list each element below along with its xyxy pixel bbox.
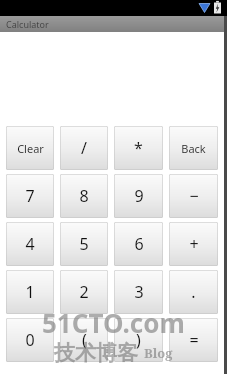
button[interactable]: + [169, 222, 218, 266]
button[interactable]: 8 [60, 174, 108, 218]
staticText: ( [82, 329, 87, 351]
staticText: * [134, 137, 143, 159]
staticText: Back [181, 141, 206, 156]
button[interactable]: * [114, 126, 163, 170]
button[interactable]: 1 [6, 270, 54, 314]
staticText: Blog [144, 344, 173, 362]
button[interactable]: 3 [114, 270, 163, 314]
staticText: + [189, 233, 199, 255]
button[interactable]: 6 [114, 222, 163, 266]
button[interactable]: = [169, 318, 218, 362]
staticText: 51CTO.com [42, 305, 185, 340]
button[interactable]: Clear [6, 126, 54, 170]
staticText: 9 [134, 185, 144, 207]
staticText: 0 [25, 329, 35, 351]
staticText: . [191, 281, 196, 303]
staticText: 6 [134, 233, 144, 255]
staticText: 5 [79, 233, 89, 255]
staticText: 4 [25, 233, 35, 255]
staticText: 8 [79, 185, 89, 207]
button[interactable]: 0 [6, 318, 54, 362]
staticText: 1 [25, 281, 35, 303]
button[interactable]: ) [114, 318, 163, 362]
staticText: ) [136, 329, 141, 351]
staticText: / [81, 137, 87, 159]
staticText: = [189, 329, 199, 351]
staticText: 7 [25, 185, 35, 207]
button[interactable]: 2 [60, 270, 108, 314]
button[interactable]: 9 [114, 174, 163, 218]
staticText: 3 [134, 281, 144, 303]
button[interactable]: Back [169, 126, 218, 170]
button[interactable]: 5 [60, 222, 108, 266]
button[interactable]: / [60, 126, 108, 170]
button[interactable]: − [169, 174, 218, 218]
staticText: 2 [79, 281, 89, 303]
staticText: Clear [17, 141, 44, 156]
button[interactable]: ( [60, 318, 108, 362]
button[interactable]: 4 [6, 222, 54, 266]
staticText: 技术博客 [54, 340, 138, 366]
button[interactable]: . [169, 270, 218, 314]
staticText: − [189, 185, 199, 207]
staticText: Calculator [6, 18, 49, 30]
button[interactable]: 7 [6, 174, 54, 218]
